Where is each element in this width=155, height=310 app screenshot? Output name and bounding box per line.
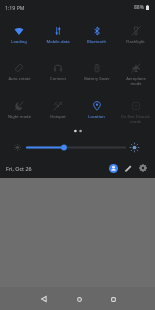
button[interactable]: Hotspot xyxy=(38,88,77,126)
button[interactable]: Back xyxy=(35,290,53,308)
staticText: Do Not Disturb mode xyxy=(121,114,150,124)
staticText: Flashlight xyxy=(126,39,145,45)
button[interactable]: Aeroplane mode xyxy=(116,50,155,88)
button[interactable]: User account xyxy=(106,161,120,175)
staticText: Hotspot xyxy=(50,114,66,120)
staticText: Fri, Oct 26 xyxy=(6,165,32,172)
staticText: Battery Saver xyxy=(84,76,110,82)
staticText: Night mode xyxy=(8,114,31,120)
staticText: Loading xyxy=(11,39,27,45)
button[interactable]: Recent apps xyxy=(104,290,122,308)
staticText: 88% xyxy=(134,4,144,11)
button[interactable]: Auto-rotate xyxy=(0,50,38,88)
staticText: Mobile-data xyxy=(46,39,70,45)
staticText: 1:19 PM xyxy=(5,4,25,11)
staticText: Location xyxy=(88,114,105,120)
button[interactable]: Settings xyxy=(136,161,150,175)
button[interactable]: Home xyxy=(70,290,88,308)
button[interactable]: Night mode xyxy=(0,88,38,126)
button[interactable]: Edit tiles xyxy=(121,161,135,175)
button[interactable]: Location xyxy=(77,88,116,126)
button[interactable]: Do Not Disturb mode xyxy=(116,88,155,126)
button[interactable]: Battery Saver xyxy=(77,50,116,88)
staticText: Bluetooth xyxy=(87,39,106,45)
staticText: Auto-rotate xyxy=(8,76,31,82)
button[interactable]: Loading xyxy=(0,13,38,50)
button[interactable]: Mobile-data xyxy=(38,13,77,50)
button[interactable]: Connect xyxy=(38,50,77,88)
staticText: Connect xyxy=(50,76,66,82)
staticText: Aeroplane mode xyxy=(126,76,146,86)
button[interactable]: Bluetooth xyxy=(77,13,116,50)
button[interactable]: Flashlight xyxy=(116,13,155,50)
